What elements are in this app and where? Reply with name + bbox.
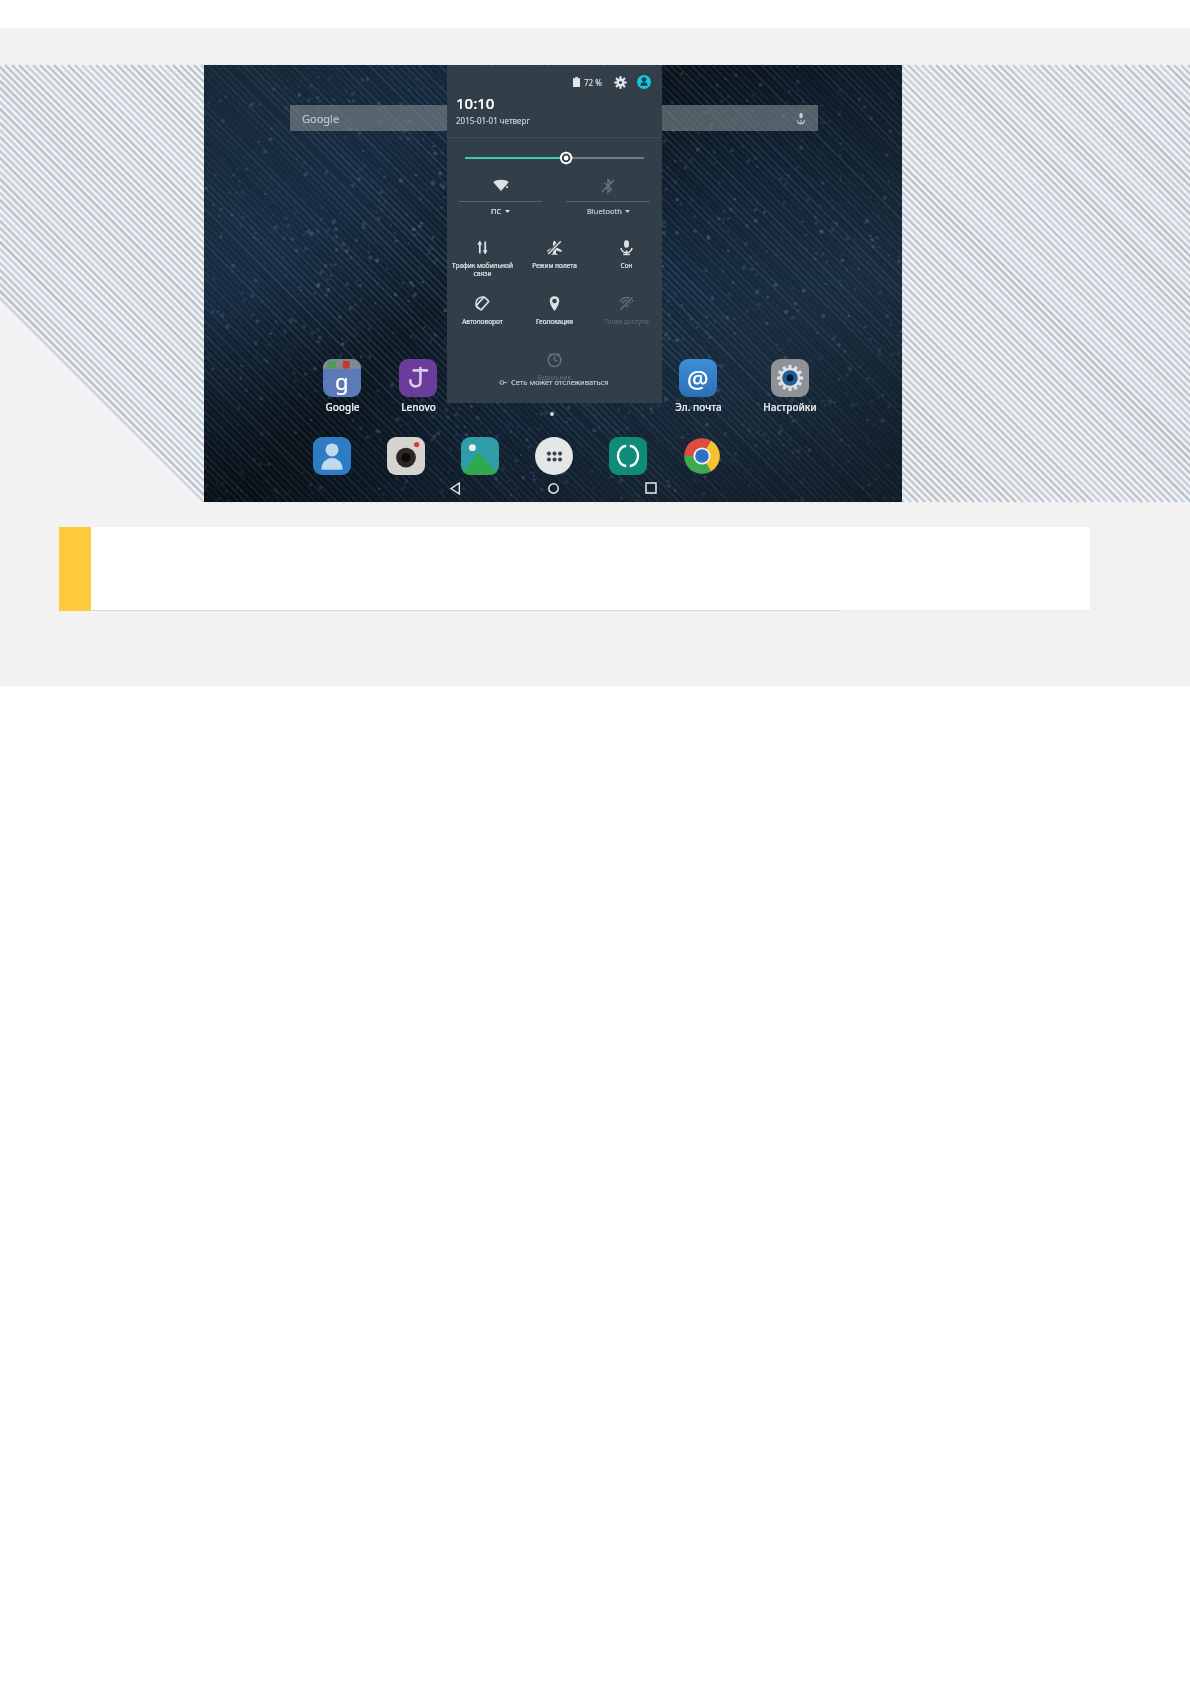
button[interactable]: Lenovo bbox=[384, 359, 452, 414]
button[interactable]: Chrome bbox=[680, 434, 724, 478]
staticText: 10:10 bbox=[456, 93, 495, 113]
button[interactable]: ПС bbox=[447, 175, 554, 216]
button[interactable]: Сеть может отслеживаться bbox=[496, 373, 613, 391]
staticText: 2015-01-01 четверг bbox=[456, 115, 530, 126]
button[interactable]: Recents bbox=[623, 474, 679, 502]
button[interactable]: Gallery bbox=[458, 434, 502, 478]
button[interactable]: Сон bbox=[590, 231, 662, 287]
button[interactable]: Home bbox=[525, 474, 581, 502]
other: Voice search bbox=[796, 113, 806, 123]
button[interactable]: Bluetooth bbox=[554, 175, 662, 216]
staticText: Сон bbox=[620, 261, 633, 270]
staticText: 72 % bbox=[584, 77, 602, 88]
staticText: Автоповорот bbox=[462, 317, 503, 326]
button[interactable]: Google bbox=[290, 105, 818, 131]
button[interactable]: Точка доступа bbox=[590, 287, 662, 343]
button[interactable]: Dolby bbox=[606, 434, 650, 478]
staticText: Bluetooth bbox=[587, 206, 622, 216]
button[interactable]: Геолокация bbox=[518, 287, 590, 343]
staticText: g bbox=[335, 366, 349, 396]
button[interactable]: User profile bbox=[636, 74, 652, 90]
staticText: Геолокация bbox=[536, 317, 573, 326]
button[interactable]: Camera bbox=[384, 434, 428, 478]
button[interactable] bbox=[447, 145, 662, 171]
staticText: Lenovo bbox=[401, 400, 436, 414]
staticText: ПС bbox=[491, 206, 502, 216]
button[interactable]: g bbox=[308, 359, 376, 414]
button[interactable]: Настройки bbox=[756, 359, 824, 414]
button[interactable]: Contacts bbox=[310, 434, 354, 478]
staticText: Будильник bbox=[537, 373, 571, 382]
staticText: Режим полета bbox=[532, 261, 577, 270]
button[interactable]: Back bbox=[427, 474, 483, 502]
staticText: Сеть может отслеживаться bbox=[511, 377, 609, 387]
button[interactable]: Settings bbox=[612, 74, 628, 90]
staticText: Google bbox=[325, 400, 360, 414]
staticText: Google bbox=[302, 111, 340, 126]
staticText: Трафик мобильной связи bbox=[452, 261, 513, 278]
staticText: Эл. почта bbox=[675, 400, 722, 414]
staticText: @ bbox=[687, 362, 709, 395]
staticText: Настройки bbox=[763, 400, 817, 414]
button[interactable]: All apps bbox=[532, 434, 576, 478]
button[interactable]: Режим полета bbox=[518, 231, 590, 287]
button[interactable]: Трафик мобильной связи bbox=[447, 231, 518, 287]
button[interactable]: Автоповорот bbox=[447, 287, 518, 343]
staticText: Точка доступа bbox=[604, 317, 649, 326]
button[interactable]: @ bbox=[664, 359, 732, 414]
button[interactable]: Будильник bbox=[518, 343, 590, 399]
